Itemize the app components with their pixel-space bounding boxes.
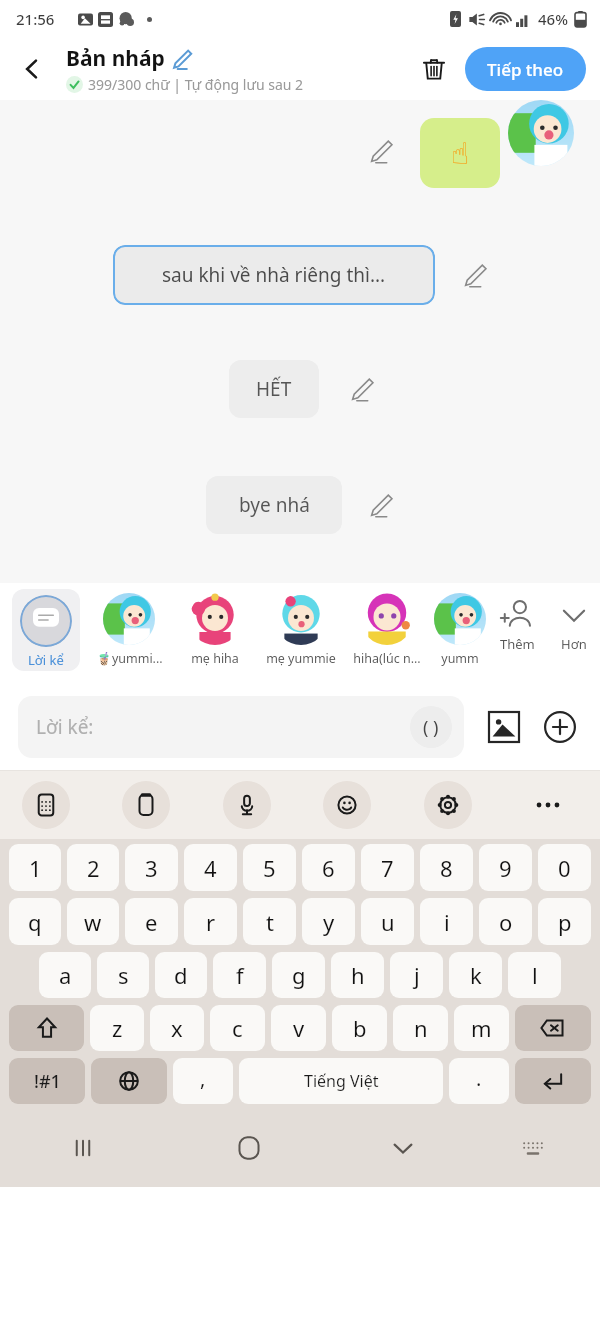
- button[interactable]: x: [150, 1005, 204, 1051]
- button[interactable]: u: [361, 898, 414, 945]
- button[interactable]: o: [479, 898, 532, 945]
- button[interactable]: Tiếng Việt: [239, 1058, 443, 1104]
- button[interactable]: More: [524, 781, 572, 829]
- button[interactable]: d: [155, 952, 207, 998]
- button[interactable]: Voice input: [223, 781, 271, 829]
- button[interactable]: Keyboard layout: [22, 781, 70, 829]
- button[interactable]: Home: [166, 1109, 331, 1187]
- staticText: 0: [558, 853, 571, 883]
- button[interactable]: s: [97, 952, 149, 998]
- button[interactable]: Edit message: [462, 262, 488, 288]
- button[interactable]: .: [449, 1058, 509, 1104]
- button[interactable]: j: [390, 952, 443, 998]
- button[interactable]: v: [271, 1005, 326, 1051]
- button[interactable]: i: [420, 898, 473, 945]
- button[interactable]: 2: [67, 844, 119, 891]
- button[interactable]: Edit message: [349, 376, 375, 402]
- button[interactable]: Settings: [424, 781, 472, 829]
- staticText: ☝: [451, 136, 470, 171]
- button[interactable]: Recents: [0, 1109, 166, 1187]
- button[interactable]: t: [243, 898, 296, 945]
- button[interactable]: !#1: [9, 1058, 85, 1104]
- staticText: Tiếng Việt: [304, 1070, 379, 1092]
- button[interactable]: Lời kể: [12, 589, 80, 671]
- button[interactable]: r: [184, 898, 237, 945]
- button[interactable]: Back: [8, 45, 56, 93]
- button[interactable]: Edit sticker: [368, 138, 394, 164]
- staticText: 🧋yummi...: [96, 650, 163, 667]
- button[interactable]: Parentheses: [410, 706, 452, 748]
- staticText: a: [59, 960, 72, 990]
- button[interactable]: Clipboard: [122, 781, 170, 829]
- button[interactable]: Hide keyboard: [331, 1109, 475, 1187]
- staticText: 9: [499, 853, 512, 883]
- staticText: mẹ hiha: [191, 650, 239, 667]
- button[interactable]: ,: [173, 1058, 233, 1104]
- button[interactable]: k: [449, 952, 502, 998]
- button[interactable]: Enter: [515, 1058, 591, 1104]
- button[interactable]: l: [508, 952, 561, 998]
- button[interactable]: Thêm: [486, 597, 548, 653]
- staticText: 8: [440, 853, 453, 883]
- button[interactable]: y: [302, 898, 355, 945]
- button[interactable]: 0: [538, 844, 591, 891]
- button[interactable]: a: [39, 952, 91, 998]
- button[interactable]: mẹ hiha: [176, 593, 254, 667]
- button[interactable]: m: [454, 1005, 509, 1051]
- staticText: 1: [29, 853, 42, 883]
- button[interactable]: p: [538, 898, 591, 945]
- button[interactable]: w: [67, 898, 119, 945]
- staticText: q: [28, 907, 42, 937]
- staticText: bye nhá: [239, 492, 310, 518]
- button[interactable]: Rename draft: [171, 48, 193, 70]
- staticText: yumm: [441, 650, 479, 667]
- button[interactable]: Tiếp theo: [465, 47, 586, 91]
- button[interactable]: Edit message: [368, 492, 394, 518]
- button[interactable]: yumm: [434, 593, 486, 667]
- button[interactable]: c: [210, 1005, 265, 1051]
- staticText: u: [381, 907, 395, 937]
- button[interactable]: Emoji: [323, 781, 371, 829]
- button[interactable]: 9: [479, 844, 532, 891]
- button[interactable]: ☝: [420, 118, 500, 188]
- staticText: w: [84, 907, 102, 937]
- button[interactable]: q: [9, 898, 61, 945]
- button[interactable]: More options: [538, 705, 582, 749]
- button[interactable]: 3: [125, 844, 178, 891]
- button[interactable]: 6: [302, 844, 355, 891]
- staticText: b: [353, 1013, 367, 1043]
- button[interactable]: Hơn: [548, 597, 600, 653]
- button[interactable]: 1: [9, 844, 61, 891]
- button[interactable]: h: [331, 952, 384, 998]
- staticText: v: [293, 1013, 305, 1043]
- button[interactable]: z: [90, 1005, 144, 1051]
- button[interactable]: 8: [420, 844, 473, 891]
- button[interactable]: g: [272, 952, 325, 998]
- button[interactable]: 5: [243, 844, 296, 891]
- button[interactable]: n: [393, 1005, 448, 1051]
- staticText: Thêm: [500, 635, 535, 653]
- button[interactable]: hiha(lúc n...: [348, 593, 426, 667]
- button[interactable]: sau khi về nhà riêng thì...: [113, 245, 435, 305]
- staticText: x: [171, 1013, 183, 1043]
- button[interactable]: e: [125, 898, 178, 945]
- button[interactable]: mẹ yummie: [262, 593, 340, 667]
- button[interactable]: Change language: [91, 1058, 167, 1104]
- button[interactable]: Shift: [9, 1005, 84, 1051]
- button[interactable]: bye nhá: [206, 476, 342, 534]
- button[interactable]: Add image: [482, 705, 526, 749]
- button[interactable]: b: [332, 1005, 387, 1051]
- button[interactable]: 4: [184, 844, 237, 891]
- button[interactable]: 🧋yummi...: [90, 593, 168, 667]
- staticText: ( ): [423, 715, 439, 740]
- staticText: c: [232, 1013, 243, 1043]
- staticText: t: [266, 907, 274, 937]
- button[interactable]: Delete: [411, 46, 457, 92]
- staticText: h: [351, 960, 365, 990]
- button[interactable]: 7: [361, 844, 414, 891]
- button[interactable]: Lời kể:: [18, 696, 464, 758]
- button[interactable]: HẾT: [229, 360, 319, 418]
- button[interactable]: Backspace: [515, 1005, 591, 1051]
- button[interactable]: Switch keyboard: [475, 1109, 590, 1187]
- button[interactable]: f: [213, 952, 266, 998]
